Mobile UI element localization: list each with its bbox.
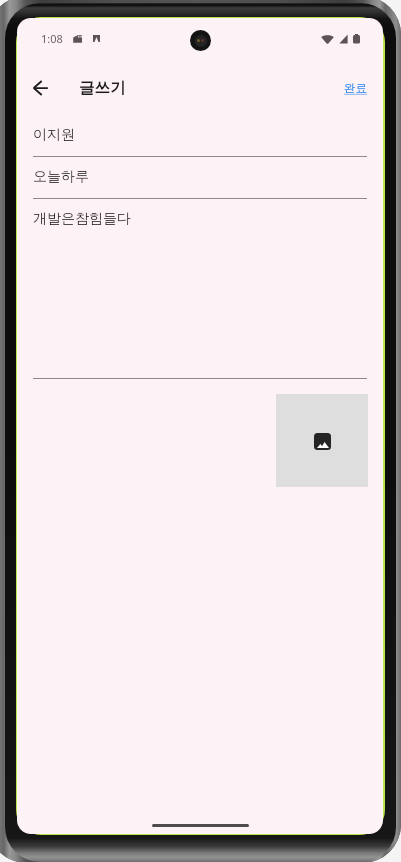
staticText: 개발은참힘들다 [33,210,131,228]
button[interactable]: 오늘하루 [33,163,367,191]
staticText: 오늘하루 [33,168,89,186]
staticText: 이지원 [33,126,75,144]
button[interactable]: Attached image [276,394,368,487]
staticText: 글쓰기 [79,78,126,98]
staticText: 완료 [344,81,367,95]
button[interactable]: 개발은참힘들다 [33,205,367,233]
button[interactable]: Back [21,69,59,107]
button[interactable]: 완료 [339,75,372,101]
staticText: 1:08 [41,31,63,46]
button[interactable]: 이지원 [33,121,367,149]
